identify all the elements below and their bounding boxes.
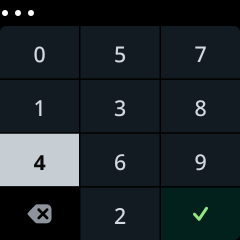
button[interactable]: 3	[80, 80, 159, 132]
staticText: 0	[33, 40, 45, 68]
staticText: 4	[33, 148, 45, 176]
staticText: 6	[114, 148, 126, 176]
staticText: 5	[114, 40, 126, 68]
button[interactable]: 7	[161, 26, 240, 78]
button[interactable]: 6	[80, 134, 159, 186]
button[interactable]: 5	[80, 26, 159, 78]
button[interactable]: 0	[0, 26, 79, 78]
staticText: 9	[194, 148, 206, 176]
button[interactable]: 8	[161, 80, 240, 132]
button[interactable]: Confirm	[161, 188, 240, 240]
staticText: 1	[33, 94, 45, 122]
staticText: 3	[114, 94, 126, 122]
button[interactable]: 2	[80, 188, 159, 240]
button[interactable]: 9	[161, 134, 240, 186]
staticText: 2	[114, 202, 126, 230]
staticText: 8	[194, 94, 206, 122]
button[interactable]: 4	[0, 134, 79, 186]
button[interactable]: Delete	[0, 188, 79, 240]
button[interactable]: 1	[0, 80, 79, 132]
staticText: 7	[194, 40, 206, 68]
